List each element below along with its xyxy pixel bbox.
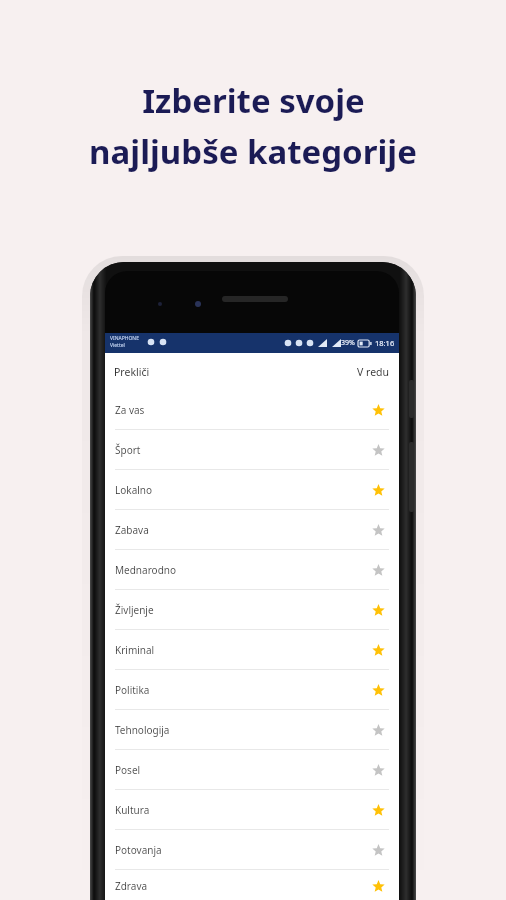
button[interactable]: Tehnologija [105, 710, 399, 749]
staticText: Prekliči [114, 365, 150, 379]
staticText: Zdrava [115, 879, 148, 893]
staticText: Tehnologija [115, 723, 170, 737]
staticText: Za vas [115, 403, 145, 417]
other: Remove Življenje from favourites [367, 599, 389, 621]
button[interactable]: Mednarodno [105, 550, 399, 589]
other: Add Posel to favourites [367, 759, 389, 781]
staticText: Viettel [110, 342, 125, 349]
staticText: VINAPHONE [110, 335, 139, 342]
staticText: Izberite svoje [142, 78, 365, 123]
other: Add Zabava to favourites [367, 519, 389, 541]
other: Add Mednarodno to favourites [367, 559, 389, 581]
other: Remove Politika from favourites [367, 679, 389, 701]
other: Remove Lokalno from favourites [367, 479, 389, 501]
button[interactable]: V redu [347, 359, 399, 385]
staticText: 18:16 [375, 338, 395, 348]
staticText: Potovanja [115, 843, 162, 857]
other: Remove Zdrava from favourites [367, 875, 389, 897]
button[interactable]: Politika [105, 670, 399, 709]
button[interactable]: Kriminal [105, 630, 399, 669]
staticText: najljubše kategorije [89, 129, 417, 174]
staticText: 39% [341, 338, 355, 348]
staticText: Mednarodno [115, 563, 177, 577]
button[interactable]: Posel [105, 750, 399, 789]
other: Remove Za vas from favourites [367, 399, 389, 421]
button[interactable]: Prekliči [105, 359, 160, 385]
button[interactable]: Potovanja [105, 830, 399, 869]
staticText: Življenje [115, 603, 154, 617]
staticText: V redu [357, 365, 390, 379]
staticText: Zabava [115, 523, 149, 537]
other: Remove Kriminal from favourites [367, 639, 389, 661]
other: Add Šport to favourites [367, 439, 389, 461]
staticText: Politika [115, 683, 150, 697]
button[interactable]: Zabava [105, 510, 399, 549]
button[interactable]: Kultura [105, 790, 399, 829]
staticText: Kultura [115, 803, 150, 817]
staticText: Posel [115, 763, 141, 777]
button[interactable]: Lokalno [105, 470, 399, 509]
other: Remove Kultura from favourites [367, 799, 389, 821]
button[interactable]: Za vas [105, 390, 399, 429]
staticText: Kriminal [115, 643, 155, 657]
button[interactable]: Življenje [105, 590, 399, 629]
other: Add Potovanja to favourites [367, 839, 389, 861]
staticText: Šport [115, 443, 141, 457]
staticText: Lokalno [115, 483, 153, 497]
button[interactable]: Zdrava [105, 870, 399, 900]
other: Add Tehnologija to favourites [367, 719, 389, 741]
button[interactable]: Šport [105, 430, 399, 469]
